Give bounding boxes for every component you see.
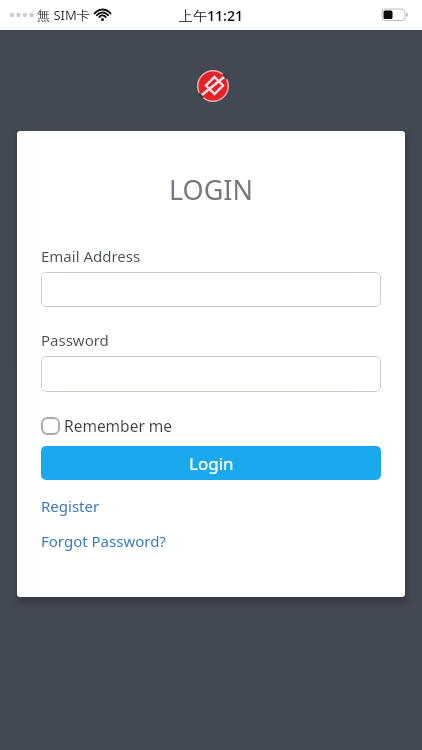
staticText: Password xyxy=(41,330,109,350)
button[interactable]: Remember me xyxy=(41,415,173,436)
staticText: 無 SIM卡 xyxy=(37,6,90,24)
staticText: 上午11:21 xyxy=(179,6,243,25)
button[interactable] xyxy=(41,356,381,392)
staticText: Remember me xyxy=(64,415,173,436)
staticText: Email Address xyxy=(41,246,141,266)
button[interactable] xyxy=(41,272,381,307)
button[interactable]: Register xyxy=(41,496,100,516)
staticText: Login xyxy=(189,452,234,475)
staticText: LOGIN xyxy=(41,171,381,208)
button[interactable]: Login xyxy=(41,446,381,480)
button[interactable]: Forgot Password? xyxy=(41,531,166,551)
